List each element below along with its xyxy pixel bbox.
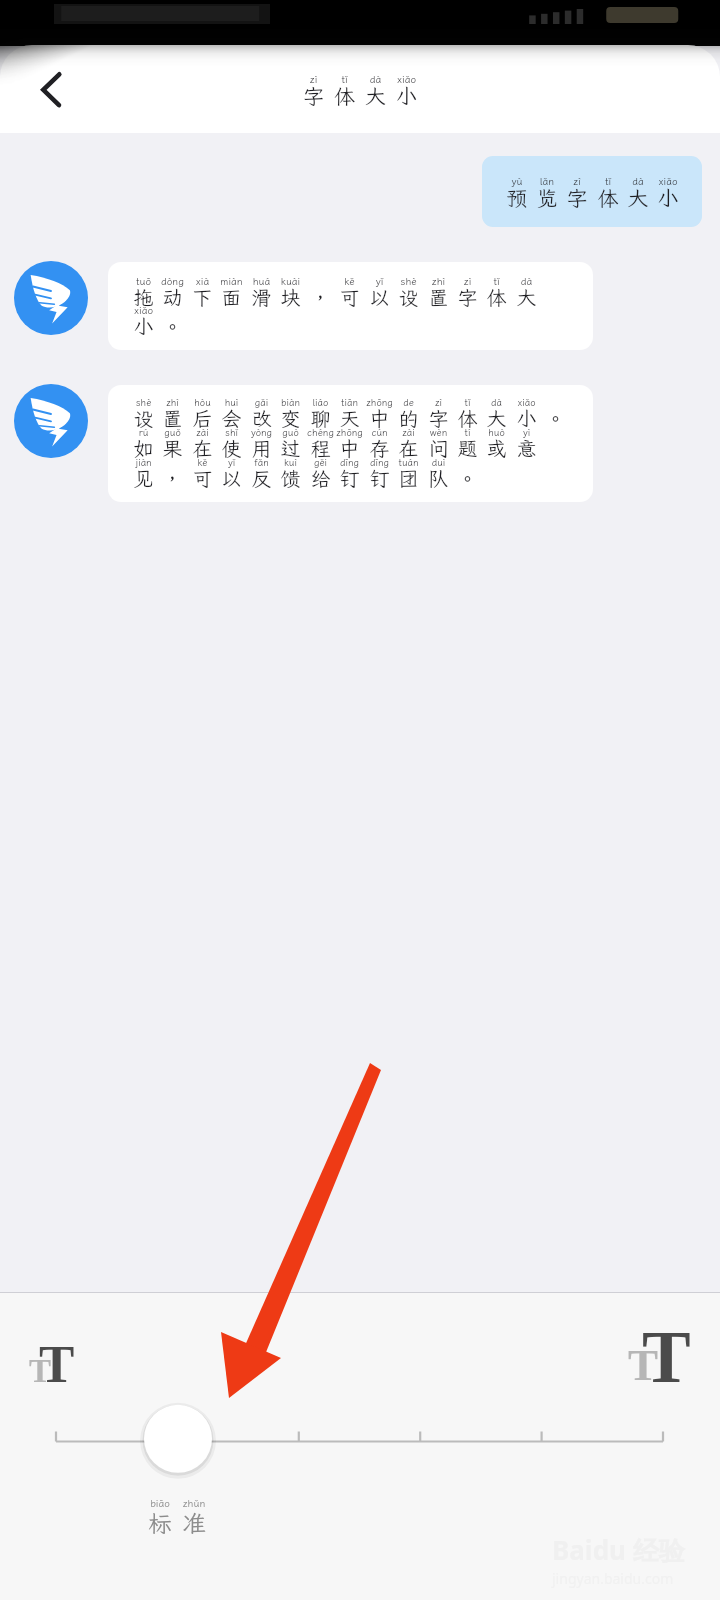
staticText: T bbox=[39, 1335, 75, 1387]
staticText: 意 bbox=[512, 435, 541, 461]
staticText: 预 bbox=[502, 184, 532, 212]
staticText: 面 bbox=[217, 284, 246, 310]
staticText: 如 bbox=[129, 435, 158, 461]
staticText: 题 bbox=[453, 435, 482, 461]
button[interactable]: Larger text bbox=[620, 1312, 700, 1382]
staticText: duì bbox=[424, 456, 453, 469]
staticText: ， bbox=[306, 284, 335, 310]
staticText: 以 bbox=[217, 465, 246, 491]
staticText: yòng bbox=[247, 426, 276, 439]
staticText: yù bbox=[502, 175, 532, 188]
staticText: Baidu 经验 bbox=[552, 1532, 685, 1568]
staticText: 见 bbox=[129, 465, 158, 491]
staticText: yǐ bbox=[217, 456, 246, 469]
staticText: 反 bbox=[247, 465, 276, 491]
staticText: 置 bbox=[424, 284, 453, 310]
staticText: gěi bbox=[306, 456, 335, 469]
staticText: 小 bbox=[391, 82, 422, 110]
staticText: 天 bbox=[335, 405, 364, 431]
staticText: 字 bbox=[453, 284, 482, 310]
staticText: 。 bbox=[453, 465, 482, 491]
staticText bbox=[158, 456, 187, 469]
staticText: 存 bbox=[365, 435, 394, 461]
staticText: huì bbox=[217, 396, 246, 409]
staticText: 标 bbox=[143, 1507, 177, 1539]
staticText: kuì bbox=[276, 456, 305, 469]
staticText: zhǔn bbox=[177, 1497, 211, 1510]
staticText: 览 bbox=[532, 184, 562, 212]
button[interactable]: Back bbox=[18, 52, 74, 108]
staticText: xià bbox=[188, 275, 217, 288]
staticText bbox=[158, 304, 187, 317]
staticText: 队 bbox=[424, 465, 453, 491]
staticText: 。 bbox=[158, 313, 187, 339]
staticText: yì bbox=[512, 426, 541, 439]
staticText: lǎn bbox=[532, 175, 562, 188]
staticText: fǎn bbox=[247, 456, 276, 469]
staticText: 中 bbox=[335, 435, 364, 461]
staticText: 设 bbox=[129, 405, 158, 431]
staticText: 以 bbox=[365, 284, 394, 310]
staticText: shè bbox=[394, 275, 423, 288]
staticText: huò bbox=[482, 426, 511, 439]
staticText: shǐ bbox=[217, 426, 246, 439]
staticText: 块 bbox=[276, 284, 305, 310]
button[interactable]: Smaller text bbox=[22, 1332, 84, 1384]
staticText: 可 bbox=[335, 284, 364, 310]
staticText: dà bbox=[360, 73, 391, 86]
staticText: 拖 bbox=[129, 284, 158, 310]
staticText: 下 bbox=[188, 284, 217, 310]
staticText: biāo bbox=[143, 1497, 177, 1510]
staticText: rú bbox=[129, 426, 158, 439]
staticText: xiǎo bbox=[653, 175, 683, 188]
button[interactable]: zì bbox=[298, 73, 422, 105]
staticText: 体 bbox=[329, 82, 360, 110]
staticText: T bbox=[628, 1340, 659, 1390]
staticText: 果 bbox=[158, 435, 187, 461]
button[interactable]: yù bbox=[482, 156, 702, 227]
staticText: jiàn bbox=[129, 456, 158, 469]
staticText: 动 bbox=[158, 284, 187, 310]
staticText: 程 bbox=[306, 435, 335, 461]
staticText bbox=[453, 456, 482, 469]
staticText: dīng bbox=[335, 456, 364, 469]
staticText: 中 bbox=[365, 405, 394, 431]
staticText: guò bbox=[276, 426, 305, 439]
staticText: 会 bbox=[217, 405, 246, 431]
staticText: 用 bbox=[247, 435, 276, 461]
staticText: tǐ bbox=[329, 73, 360, 86]
staticText: dà bbox=[512, 275, 541, 288]
staticText: 体 bbox=[482, 284, 511, 310]
staticText: gǎi bbox=[247, 396, 276, 409]
staticText: 在 bbox=[188, 435, 217, 461]
staticText: dà bbox=[623, 175, 653, 188]
staticText: xiǎo bbox=[129, 304, 158, 317]
staticText: kě bbox=[188, 456, 217, 469]
staticText: zhōng bbox=[365, 396, 394, 409]
button[interactable]: Font size slider bbox=[134, 1395, 222, 1483]
staticText: 。 bbox=[541, 405, 570, 431]
staticText: 置 bbox=[158, 405, 187, 431]
staticText: miàn bbox=[217, 275, 246, 288]
staticText: 滑 bbox=[247, 284, 276, 310]
staticText: tiān bbox=[335, 396, 364, 409]
button[interactable]: tuō bbox=[108, 262, 593, 350]
staticText: 设 bbox=[394, 284, 423, 310]
button[interactable]: shè bbox=[108, 385, 593, 502]
staticText: zài bbox=[188, 426, 217, 439]
staticText: xiǎo bbox=[391, 73, 422, 86]
staticText: 大 bbox=[512, 284, 541, 310]
staticText: wèn bbox=[424, 426, 453, 439]
staticText: kuài bbox=[276, 275, 305, 288]
staticText: 馈 bbox=[276, 465, 305, 491]
staticText: tǐ bbox=[593, 175, 623, 188]
staticText: 小 bbox=[129, 313, 158, 339]
staticText: dà bbox=[482, 396, 511, 409]
staticText: 小 bbox=[512, 405, 541, 431]
staticText: 或 bbox=[482, 435, 511, 461]
staticText: ， bbox=[158, 465, 187, 491]
staticText: biàn bbox=[276, 396, 305, 409]
staticText: zhì bbox=[158, 396, 187, 409]
staticText: 问 bbox=[424, 435, 453, 461]
